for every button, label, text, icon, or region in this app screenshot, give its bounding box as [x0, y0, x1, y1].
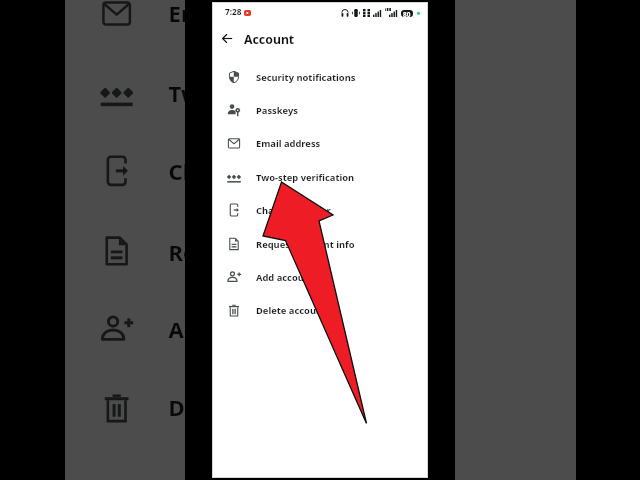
button[interactable]: Add account	[67, 291, 576, 369]
staticText: Email address	[256, 137, 321, 150]
staticText: Delete account	[169, 393, 336, 423]
staticText: Change number	[169, 157, 346, 187]
button[interactable]: Request account info	[67, 213, 576, 291]
staticText: Request account info	[169, 237, 402, 268]
staticText: 7:28	[225, 6, 242, 17]
staticText: Security notifications	[256, 71, 356, 84]
button[interactable]: Change number	[67, 133, 576, 211]
staticText: Delete account	[256, 304, 327, 317]
button[interactable]: Email address	[67, 0, 576, 53]
button[interactable]: Add account	[213, 261, 427, 294]
staticText: Add account	[256, 271, 314, 284]
button[interactable]: Passkeys	[213, 94, 427, 127]
staticText: Add account	[169, 315, 305, 345]
staticText: 80	[403, 10, 411, 17]
button[interactable]: Two-step verification	[67, 55, 576, 133]
button[interactable]: Email address	[213, 127, 427, 160]
button[interactable]: Delete account	[213, 294, 427, 327]
button[interactable]: Security notifications	[213, 61, 427, 94]
staticText: Passkeys	[256, 104, 298, 117]
button[interactable]: Two-step verification	[213, 161, 427, 194]
staticText: Request account info	[256, 238, 355, 251]
staticText: Change number	[256, 204, 331, 217]
button[interactable]: Back	[217, 28, 238, 49]
button[interactable]: Request account info	[213, 228, 427, 261]
staticText: Email address	[169, 0, 322, 29]
staticText: Account	[244, 31, 295, 48]
button[interactable]: Change number	[213, 194, 427, 227]
staticText: Two-step verification	[169, 79, 402, 109]
staticText: Two-step verification	[256, 171, 355, 184]
button[interactable]: Delete account	[67, 369, 576, 447]
